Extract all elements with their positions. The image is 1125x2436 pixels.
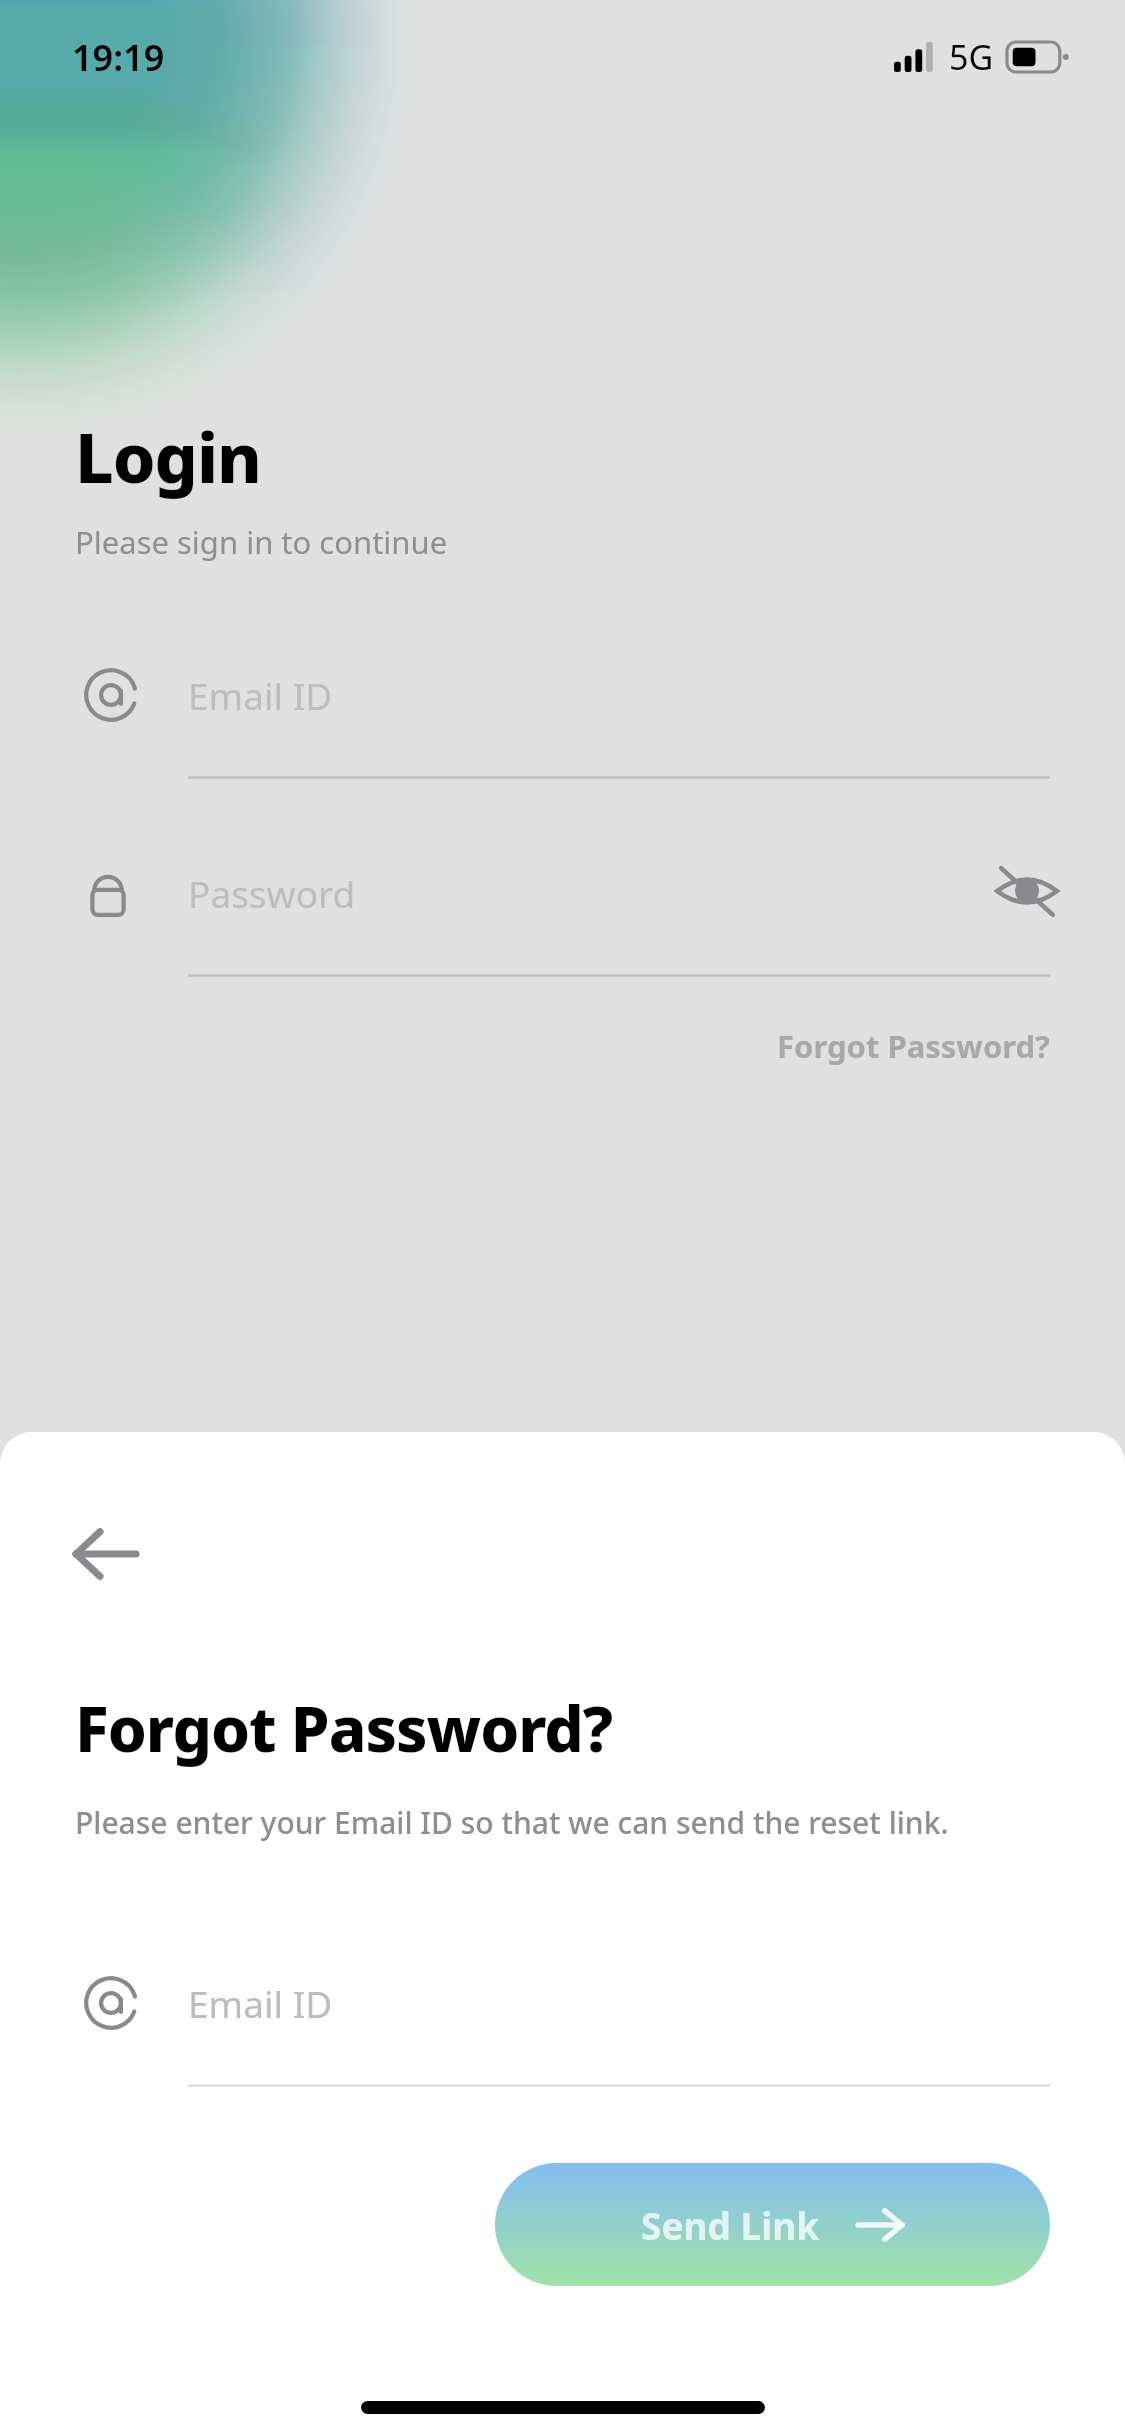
staticText: 5G	[949, 34, 994, 80]
staticText: Please sign in to continue	[75, 521, 448, 563]
staticText: Password	[188, 868, 356, 918]
button[interactable]: Email ID	[0, 1939, 1125, 2087]
button[interactable]: Back	[52, 1514, 172, 1594]
button[interactable]: Toggle password visibility	[987, 851, 1067, 931]
button[interactable]: Password	[0, 829, 1125, 977]
staticText: 19:19	[72, 33, 165, 82]
button[interactable]: Email ID	[0, 631, 1125, 779]
staticText: Forgot Password?	[777, 1025, 1050, 1067]
staticText: Please enter your Email ID so that we ca…	[75, 1802, 949, 1843]
staticText: Email ID	[188, 1978, 333, 2028]
staticText: Forgot Password?	[75, 1686, 613, 1770]
staticText: Email ID	[188, 670, 333, 720]
staticText: Login	[75, 410, 261, 503]
button[interactable]: Forgot Password?	[777, 1019, 1125, 1073]
button[interactable]: Send Link	[495, 2163, 1050, 2286]
staticText: Send Link	[641, 2200, 820, 2250]
